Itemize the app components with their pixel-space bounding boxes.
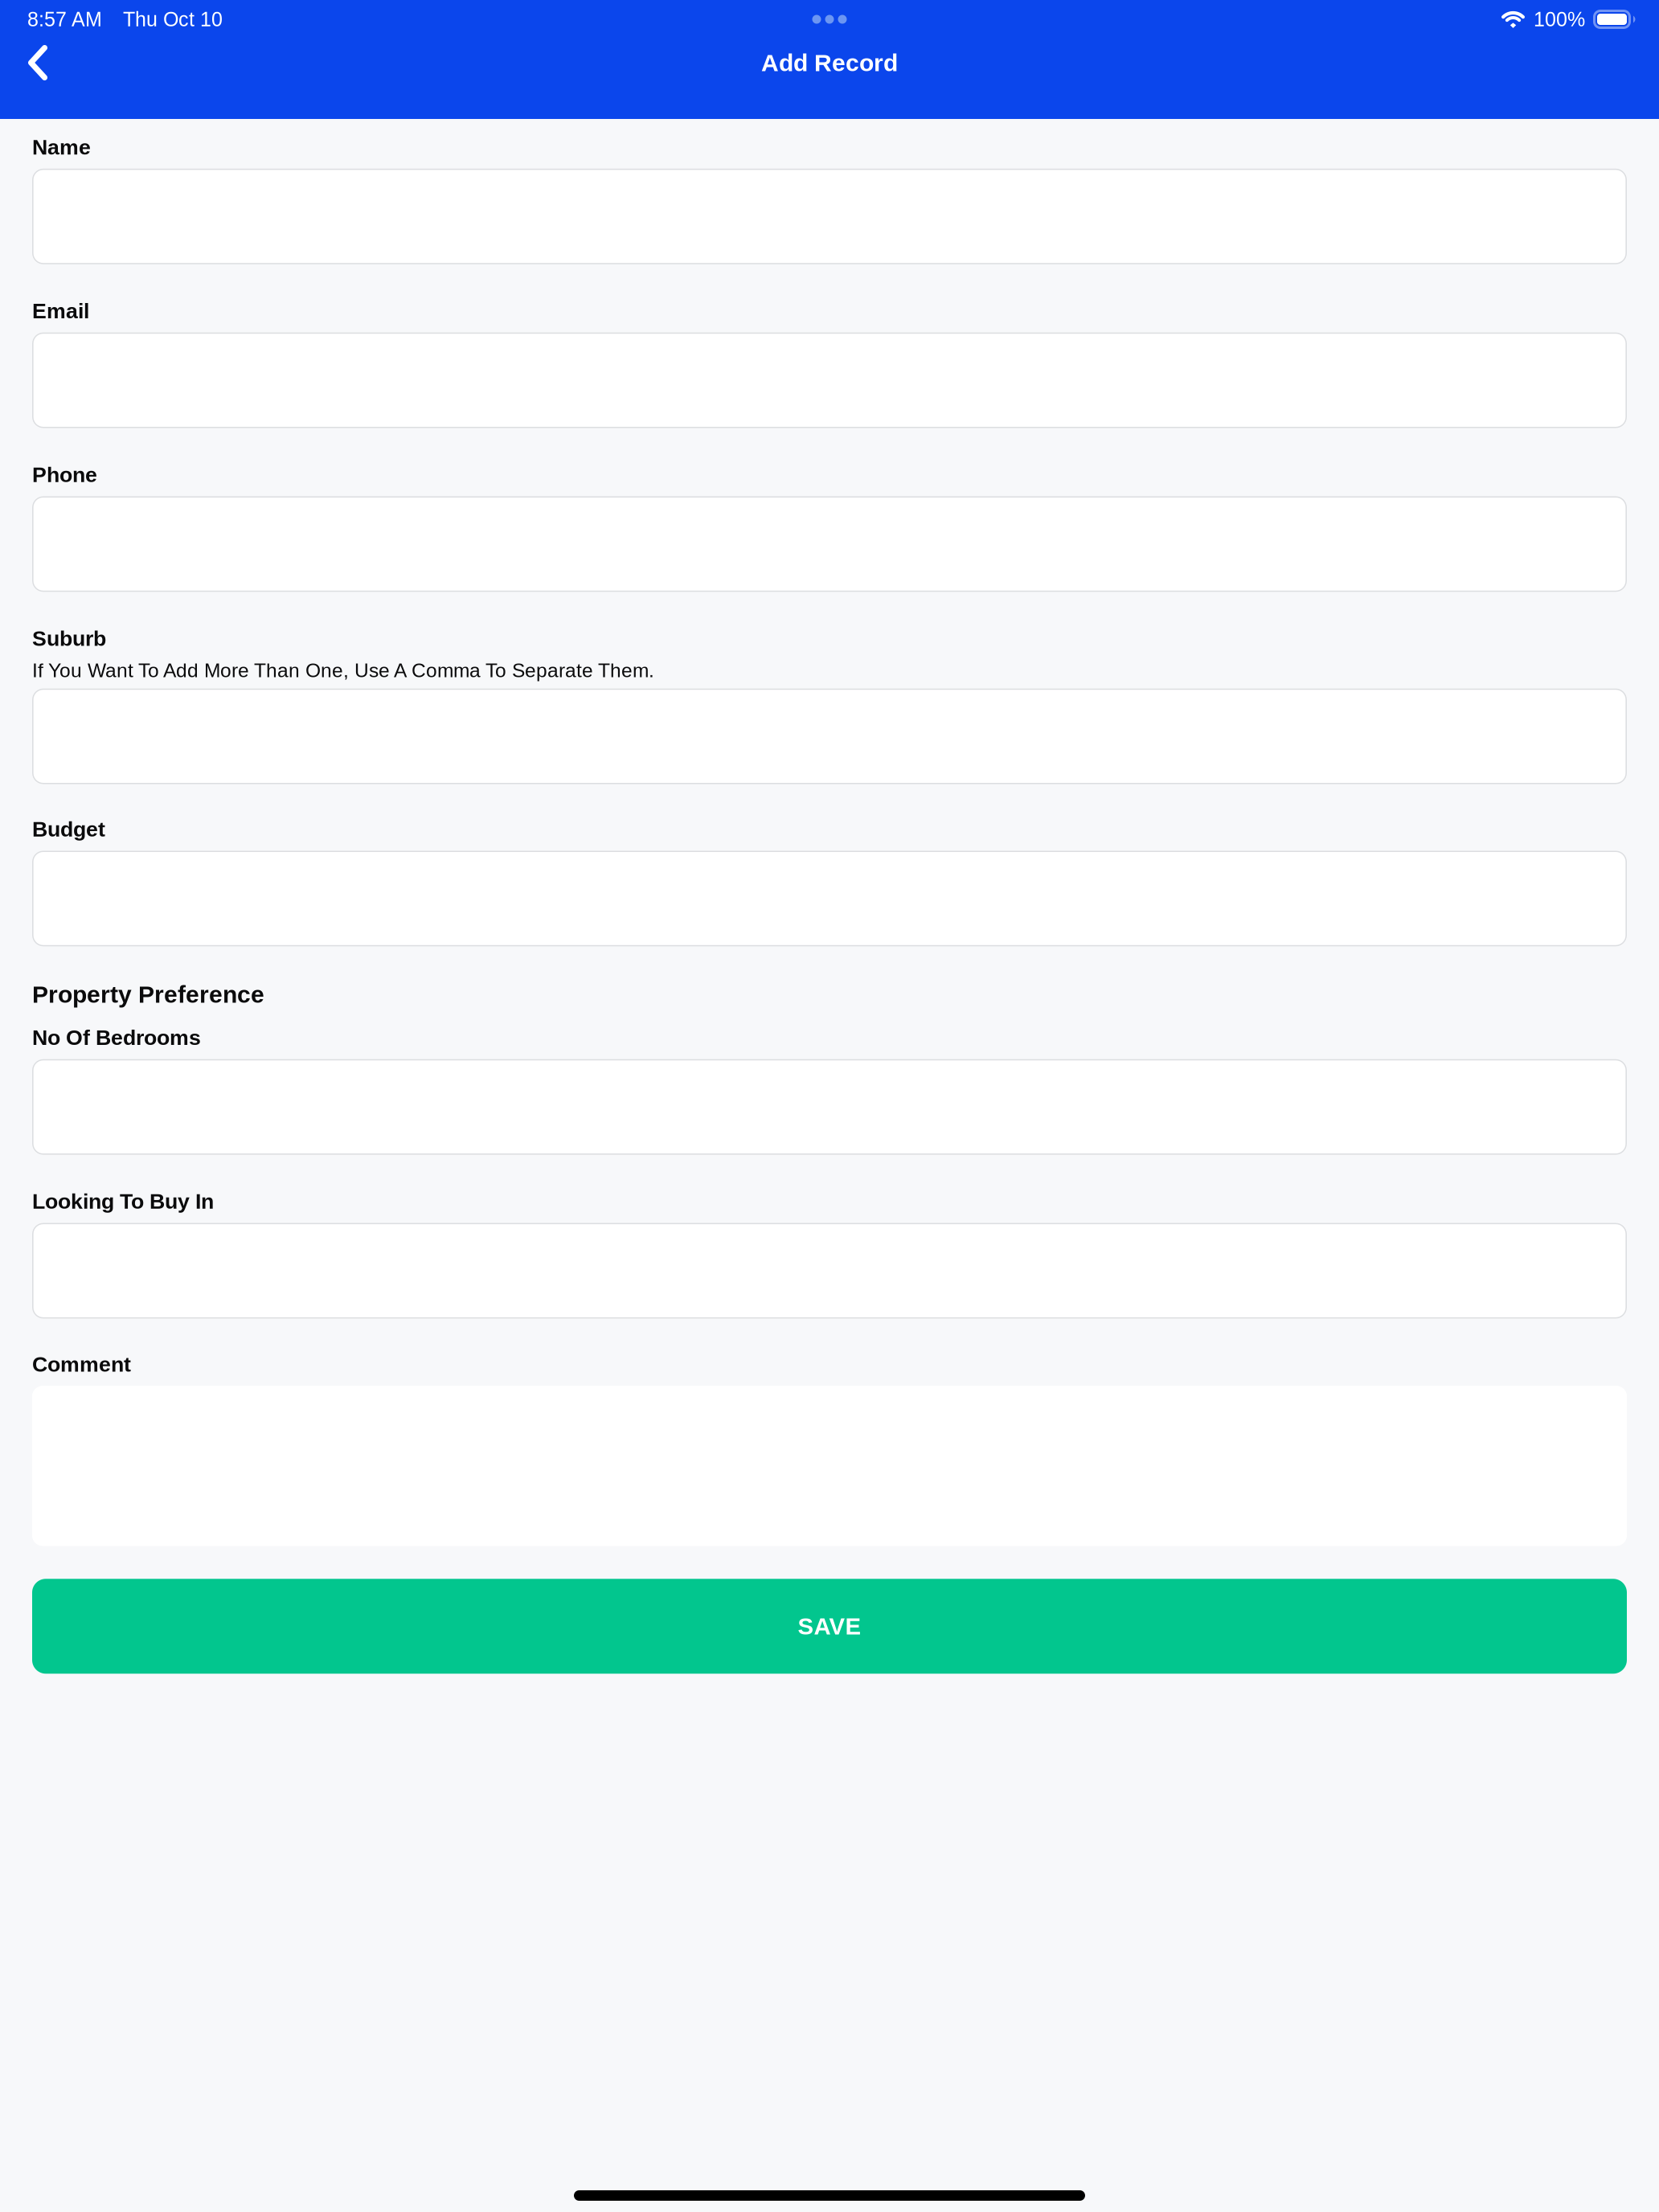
staticText: Property Preference [32,981,264,1008]
button[interactable]: Looking To Buy In [32,1213,1627,1319]
staticText: 100% [1534,8,1585,30]
staticText: Email [32,299,89,323]
button[interactable]: SAVE [32,1579,1627,1674]
staticText: SAVE [798,1613,861,1639]
staticText: 8:57 AM [27,8,102,30]
staticText: No Of Bedrooms [32,1026,201,1049]
button[interactable]: Suburb [32,681,1627,784]
button[interactable]: Email [32,323,1627,428]
button[interactable]: Phone [32,487,1627,592]
button[interactable]: Name [32,159,1627,264]
button[interactable]: No Of Bedrooms [32,1049,1627,1155]
staticText: Phone [32,463,97,487]
staticText: Suburb [32,626,106,650]
staticText: Add Record [761,49,898,76]
staticText: If You Want To Add More Than One, Use A … [32,659,654,681]
staticText: Thu Oct 10 [123,8,223,30]
button[interactable]: Back [0,39,76,87]
staticText: Name [32,135,91,159]
staticText: Looking To Buy In [32,1189,214,1213]
button[interactable]: Budget [32,841,1627,946]
staticText: Comment [32,1352,131,1376]
staticText: Budget [32,817,105,841]
